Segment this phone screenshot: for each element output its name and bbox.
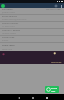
staticText: Country / Region (2, 29, 21, 32)
button[interactable]: Email address (0, 15, 64, 21)
staticText: Jordan Avery (2, 11, 16, 14)
staticText: Install (51, 87, 58, 90)
button[interactable]: Phone number (0, 22, 64, 28)
staticText: Postal code (2, 36, 15, 39)
button[interactable]: More options (59, 4, 63, 8)
button[interactable]: Full name (0, 8, 64, 14)
staticText: Full name (2, 8, 13, 11)
button[interactable]: Navigation menu (1, 4, 5, 8)
staticText: Some label (2, 43, 15, 46)
button[interactable]: Postal code (0, 36, 64, 42)
button[interactable]: Install (45, 86, 59, 93)
staticText: jordan.avery@mail.com (2, 18, 27, 21)
button[interactable]: Back (16, 95, 21, 100)
staticText: SECTION LABEL (46, 8, 62, 11)
staticText: Email address (2, 15, 18, 18)
staticText: United States (2, 32, 16, 35)
button[interactable]: Search (54, 4, 58, 8)
button[interactable]: Some label (0, 43, 64, 51)
staticText: detail line (2, 48, 13, 51)
staticText: +1 555 0134 (2, 25, 15, 28)
button[interactable]: sponsored (0, 51, 64, 64)
staticText: Phone number (2, 22, 19, 25)
staticText: 94043 (2, 39, 9, 42)
staticText: now (51, 90, 56, 93)
button[interactable]: Recent apps (44, 95, 49, 100)
button[interactable]: Country / Region (0, 29, 64, 35)
staticText: sponsored (51, 61, 62, 64)
button[interactable]: Home (30, 95, 35, 100)
